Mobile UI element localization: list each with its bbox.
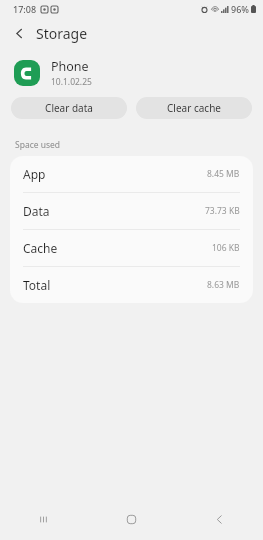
staticText: Total <box>23 277 51 293</box>
staticText: 106 KB <box>212 242 240 254</box>
staticText: 10.1.02.25 <box>51 76 92 88</box>
staticText: 17:08 <box>13 3 37 15</box>
button[interactable]: App <box>10 156 253 192</box>
button[interactable]: Data <box>10 193 253 229</box>
staticText: App <box>23 166 46 182</box>
staticText: 8.45 MB <box>207 168 240 180</box>
button[interactable]: Total <box>10 267 253 303</box>
staticText: Data <box>23 203 50 219</box>
button[interactable]: Back <box>6 20 32 46</box>
button[interactable]: Clear data <box>11 97 127 119</box>
staticText: Cache <box>23 240 58 256</box>
staticText: 96% <box>231 3 249 15</box>
staticText: Phone <box>51 58 89 75</box>
button[interactable]: Clear cache <box>136 97 252 119</box>
staticText: Clear cache <box>167 101 221 115</box>
staticText: Space used <box>15 139 61 151</box>
button[interactable]: Home <box>87 498 175 540</box>
staticText: 73.73 KB <box>205 205 240 217</box>
staticText: 8.63 MB <box>207 279 240 291</box>
button[interactable]: Back <box>175 498 263 540</box>
staticText: Clear data <box>45 101 93 115</box>
button[interactable]: Recent apps <box>0 498 87 540</box>
staticText: Storage <box>36 24 88 43</box>
button[interactable]: Cache <box>10 230 253 266</box>
